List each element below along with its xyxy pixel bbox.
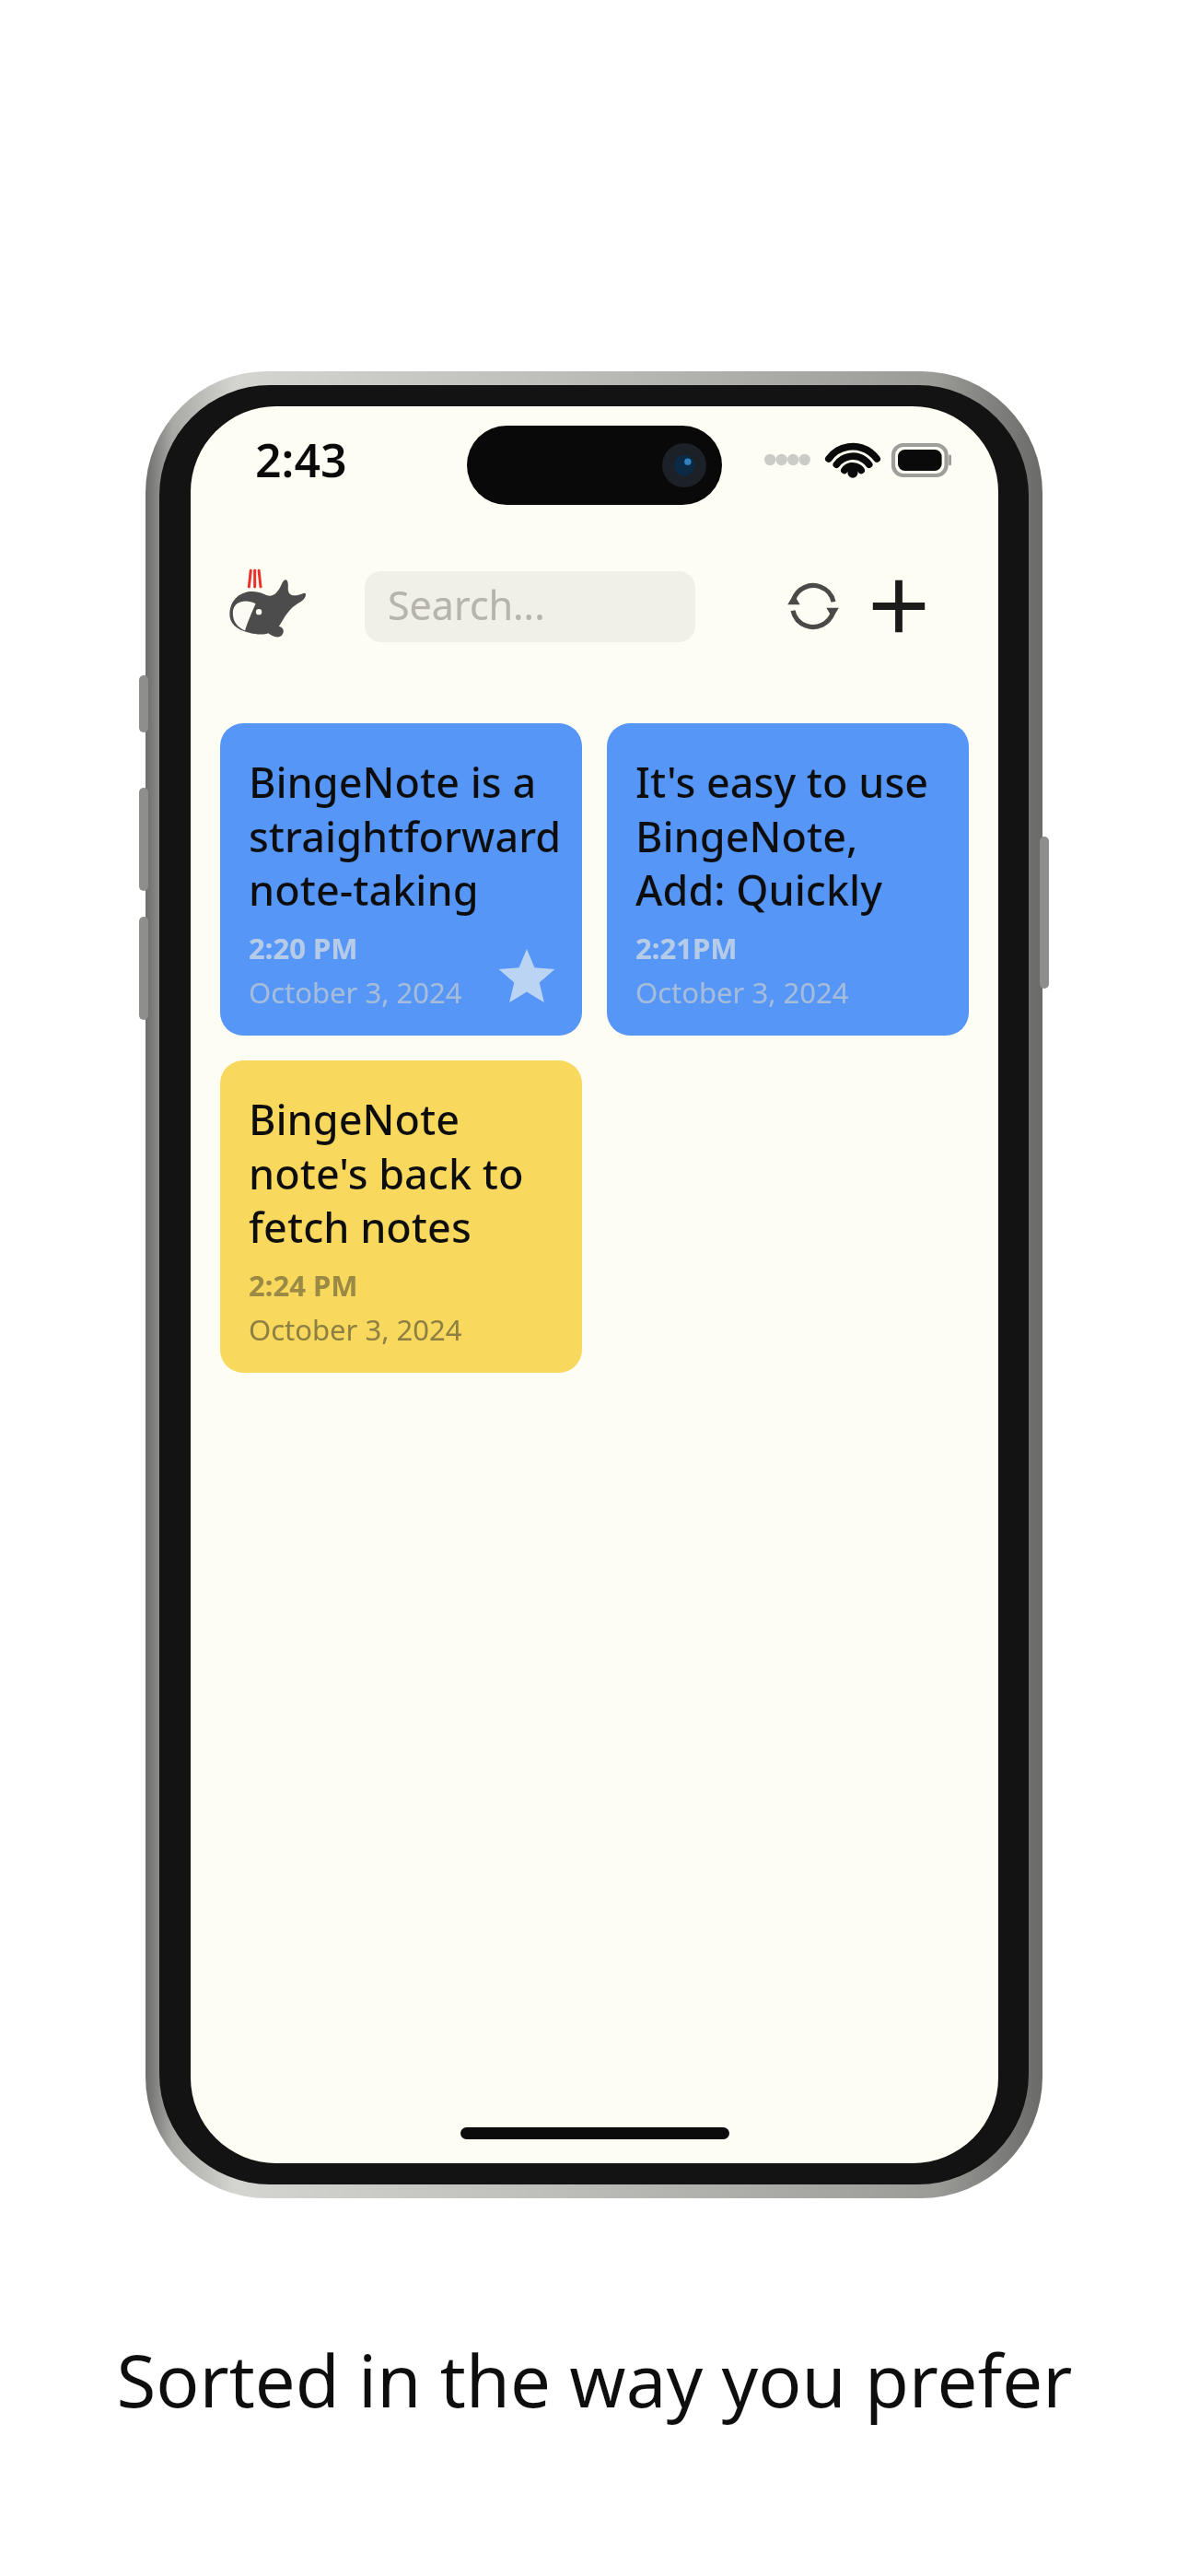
- staticText: Search...: [388, 578, 545, 632]
- staticText: October 3, 2024: [249, 1310, 462, 1349]
- staticText: 2:20 PM: [249, 929, 358, 967]
- staticText: October 3, 2024: [249, 973, 462, 1012]
- staticText: 2:21PM: [635, 929, 738, 967]
- staticText: BingeNote note's back to fetch notes: [249, 1091, 564, 1255]
- button[interactable]: Add note: [856, 564, 941, 649]
- staticText: Sorted in the way you prefer: [116, 2331, 1073, 2429]
- staticText: 2:24 PM: [249, 1266, 358, 1305]
- button[interactable]: Favorite: [495, 947, 558, 1010]
- button[interactable]: BingeNote note's back to fetch notes: [220, 1060, 582, 1373]
- button[interactable]: It's easy to use BingeNote, Add: Quickly…: [607, 723, 969, 1036]
- staticText: It's easy to use BingeNote, Add: Quickly…: [635, 754, 950, 918]
- button[interactable]: Search...: [365, 571, 695, 642]
- button[interactable]: BingeNote is a straightforward note-taki…: [220, 723, 582, 1036]
- button[interactable]: BingeNote logo: [218, 558, 314, 654]
- button[interactable]: Sync notes: [771, 564, 856, 649]
- staticText: 2:43: [255, 428, 347, 491]
- staticText: October 3, 2024: [635, 973, 849, 1012]
- staticText: BingeNote is a straightforward note-taki…: [249, 754, 564, 918]
